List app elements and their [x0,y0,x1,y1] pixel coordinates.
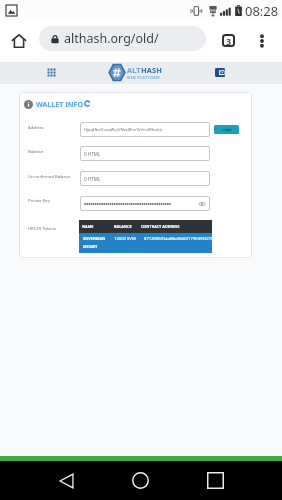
button[interactable]: copy [214,125,239,134]
staticText: althash.org/old/ [64,30,159,47]
staticText: 8712905f0da86b56fd3179599f3276c6 [144,236,218,242]
button[interactable]: althash.org/old/ [39,26,206,51]
staticText: HjpgIAtzDusqWvjUNskJ8hnTeVnuWhwkjr [84,127,163,133]
button[interactable]: Home [5,27,33,55]
button[interactable]: Refresh [81,97,93,109]
staticText: HRC20 Tokens [28,226,56,232]
staticText: copy [222,127,232,133]
staticText: 12000 SVM [114,236,136,242]
button[interactable]: HjpgIAtzDusqWvjUNskJ8hnTeVnuWhwkjr [80,122,210,137]
staticText: 0 HTML [84,151,101,157]
staticText: 3 [226,35,232,47]
staticText: 0 HTML [84,176,101,182]
button[interactable]: Menu [44,65,59,80]
button[interactable]: Wallet [212,64,228,80]
button[interactable]: 0 HTML [80,146,210,161]
staticText: CONTRACT ADDRESS [141,224,180,229]
button[interactable]: 0 HTML [80,171,210,186]
button[interactable]: Recent apps [197,462,234,499]
staticText: NAME [82,224,94,229]
staticText: Private Key [28,198,50,204]
button[interactable]: More options [248,27,275,54]
staticText: ALT [127,65,141,75]
staticText: BALANCE [114,224,132,229]
staticText: WALLET INFO [36,99,84,109]
staticText: 08:28 [245,2,279,20]
staticText: HASH [141,65,162,75]
staticText: Balance [28,149,44,155]
button[interactable]: Back [48,462,85,499]
button[interactable]: Show private key [197,199,206,208]
button[interactable]: Tabs [215,27,242,54]
button[interactable]: Show private key [80,196,210,211]
staticText: SOVEREIGN MONEY [83,236,106,249]
staticText: Unconfirmed Balance [28,174,71,180]
staticText: Address [28,125,44,131]
staticText: WEB PLATFORM [127,75,160,80]
button[interactable]: Home [122,462,159,499]
